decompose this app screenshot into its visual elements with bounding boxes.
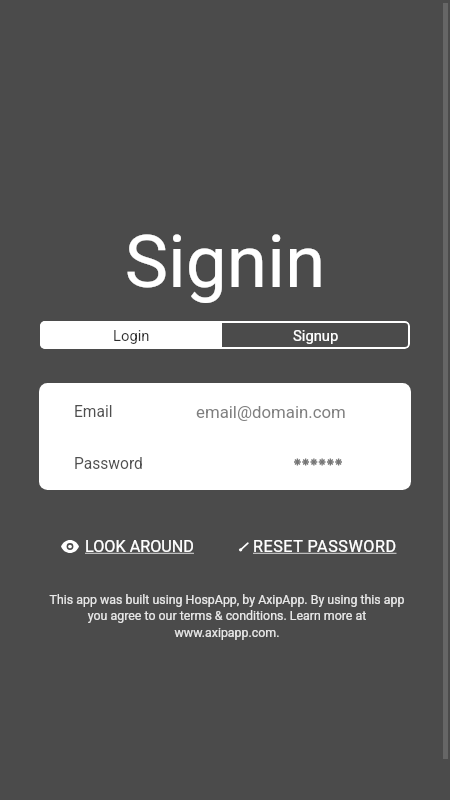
button[interactable]: Look around [57,533,198,560]
button[interactable]: Login [40,321,222,349]
staticText: LOOK AROUND [85,537,194,556]
staticText: This app was built using HospApp, by Axi… [42,592,412,640]
staticText: Password [74,455,143,473]
button[interactable]: Password [39,437,411,490]
staticText: email@domain.com [196,402,346,422]
staticText: Signin [0,219,450,305]
staticText: Signup [293,327,339,344]
staticText: RESET PASSWORD [253,537,397,556]
staticText: Login [113,327,150,344]
staticText: Email [74,403,113,421]
other: Look around [61,540,79,553]
button[interactable]: Email [39,385,411,438]
button[interactable]: Signup [222,321,410,349]
other: Reset password [239,540,249,553]
button[interactable]: Reset password [235,533,401,560]
